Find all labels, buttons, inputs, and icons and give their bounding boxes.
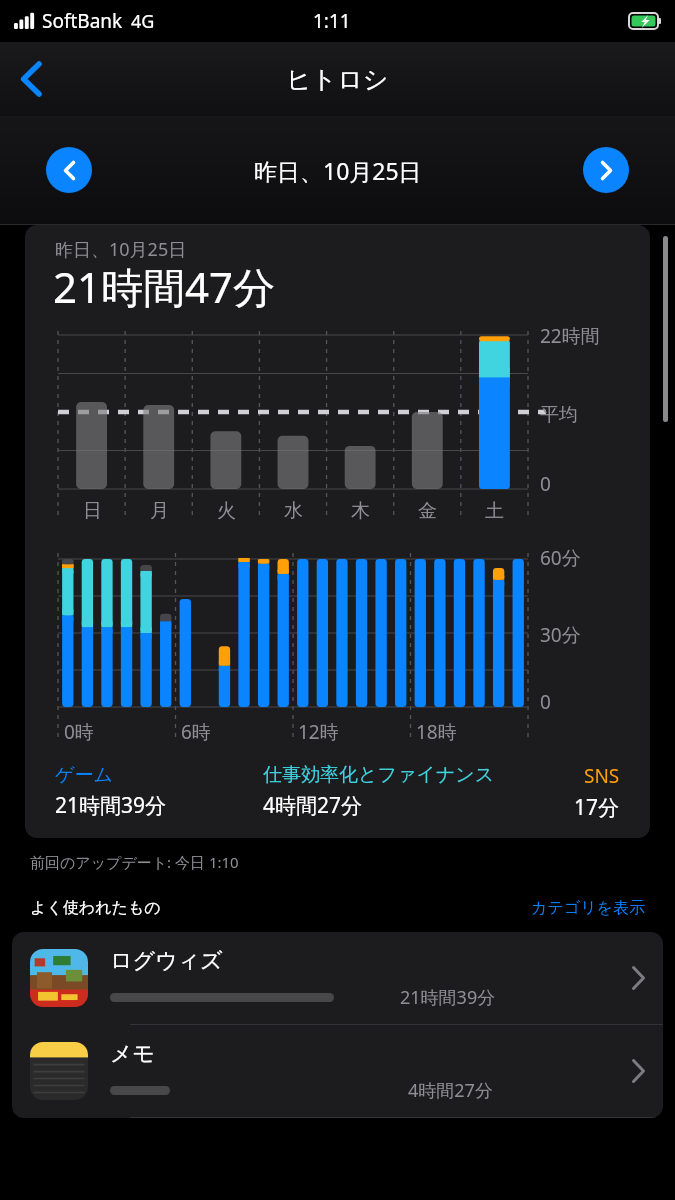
staticText: 0時 xyxy=(64,719,94,745)
staticText: 火 xyxy=(217,499,236,523)
staticText: メモ xyxy=(110,1040,156,1068)
staticText: 1:11 xyxy=(313,8,351,34)
staticText: 昨日、10月25日 xyxy=(254,155,422,186)
button[interactable]: メモ xyxy=(12,1025,663,1117)
staticText: ログウィズ xyxy=(110,947,223,975)
staticText: 水 xyxy=(284,499,303,523)
staticText: 0 xyxy=(540,471,551,497)
staticText: 日 xyxy=(83,499,102,523)
staticText: 平均 xyxy=(540,403,578,427)
staticText: よく使われたもの xyxy=(30,898,161,918)
staticText: 6時 xyxy=(181,719,211,745)
staticText: 金 xyxy=(418,499,437,523)
staticText: 前回のアップデート: 今日 1:10 xyxy=(30,852,239,872)
staticText: 60分 xyxy=(540,545,581,571)
staticText: SoftBank xyxy=(42,8,123,34)
staticText: 22時間 xyxy=(540,323,600,349)
staticText: 30分 xyxy=(540,622,581,648)
staticText: 仕事効率化とファイナンス xyxy=(263,763,495,787)
staticText: SNS xyxy=(584,763,620,789)
staticText: ヒトロシ xyxy=(286,64,389,95)
staticText: カテゴリを表示 xyxy=(531,898,645,918)
button[interactable]: 次の日 xyxy=(583,147,629,193)
button[interactable]: 戻る xyxy=(8,55,56,103)
staticText: 昨日、10月25日 xyxy=(55,237,187,262)
staticText: 21時間39分 xyxy=(400,985,496,1010)
staticText: 0 xyxy=(540,689,551,715)
staticText: 21時間39分 xyxy=(55,791,167,820)
staticText: 4G xyxy=(131,9,155,34)
button[interactable]: ログウィズ xyxy=(12,932,663,1024)
staticText: 21時間47分 xyxy=(53,258,276,315)
staticText: 土 xyxy=(485,499,504,523)
staticText: 17分 xyxy=(574,793,620,822)
button[interactable]: カテゴリを表示 xyxy=(531,898,645,918)
staticText: 木 xyxy=(351,499,370,523)
staticText: 12時 xyxy=(298,719,339,745)
staticText: 4時間27分 xyxy=(408,1078,493,1103)
staticText: 18時 xyxy=(416,719,457,745)
staticText: 月 xyxy=(150,499,169,523)
staticText: ゲーム xyxy=(55,763,113,787)
button[interactable]: 前の日 xyxy=(46,147,92,193)
staticText: 4時間27分 xyxy=(263,791,363,820)
